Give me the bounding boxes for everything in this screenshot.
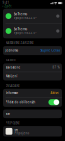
button[interactable]: Jednotka <box>3 46 62 55</box>
staticText: Eva <box>14 128 17 131</box>
staticText: Přidat do oblíbených <box>6 100 36 104</box>
staticText: Stupně Celsia <box>40 49 59 52</box>
staticText: Stav <box>6 112 10 116</box>
staticText: Informace <box>6 91 19 95</box>
staticText: 87 % <box>52 66 59 69</box>
staticText: BATERIE <box>6 59 16 62</box>
staticText: Eva Thermo <box>14 27 28 31</box>
staticText: Nabíjení <box>6 74 18 78</box>
staticText: Jednotka <box>6 49 18 52</box>
staticText: Stav baterie <box>6 66 21 69</box>
staticText: PŘIPOJENÍ <box>6 121 20 125</box>
staticText: NASTAVENÍ ZAŘÍZENÍ <box>6 41 34 45</box>
staticText: OVLÁDÁNÍ <box>6 84 20 88</box>
button[interactable]: Nabíjení <box>3 72 62 80</box>
staticText: 9:41 <box>3 1 10 4</box>
staticText: Připojeno <box>14 131 29 135</box>
button[interactable]: Eva Thermo <box>3 24 62 38</box>
button[interactable]: Přidat do oblíbených <box>3 97 62 107</box>
button[interactable]: Informace <box>3 89 62 97</box>
button[interactable]: Eva — Připojeno <box>3 126 62 137</box>
staticText: Aktivní <box>50 91 59 95</box>
staticText: Vytopit na 22.0° <box>14 31 37 34</box>
button[interactable]: Stav baterie <box>3 63 62 72</box>
staticText: Eva Thermo <box>14 13 28 16</box>
button[interactable]: Stav <box>3 109 62 118</box>
button[interactable]: Eva Thermo <box>3 9 62 23</box>
staticText: Vytopit na 22.0° <box>14 16 37 20</box>
staticText: ‹ Zpět <box>3 4 12 8</box>
